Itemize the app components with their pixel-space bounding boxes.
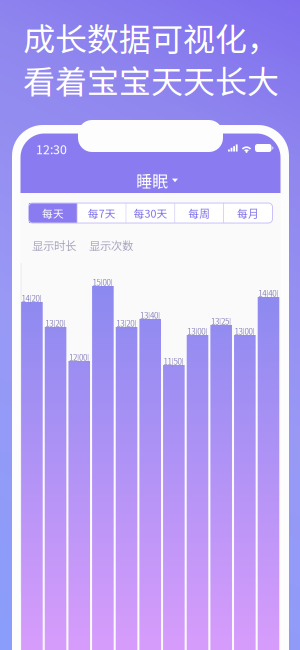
staticText: 11|50| <box>164 355 184 367</box>
staticText: 每周 <box>188 205 210 221</box>
staticText: 看着宝宝天天长大 <box>23 56 279 103</box>
staticText: 12|00| <box>69 351 89 363</box>
staticText: 成长数据可视化， <box>23 14 279 60</box>
button[interactable]: 每7天 <box>78 203 126 223</box>
button[interactable]: 每30天 <box>126 203 174 223</box>
staticText: 每天 <box>42 205 64 221</box>
staticText: 每30天 <box>133 205 167 221</box>
staticText: 13|25| <box>211 315 231 327</box>
button[interactable]: 每月 <box>224 203 272 223</box>
button[interactable]: 显示时长 <box>32 237 76 253</box>
button[interactable]: 睡眠 <box>130 166 184 195</box>
staticText: 13|00| <box>187 325 207 337</box>
staticText: 13|20| <box>116 317 136 329</box>
staticText: 13|40| <box>140 309 160 321</box>
staticText: 显示时长 <box>32 237 76 253</box>
staticText: 显示次数 <box>89 237 133 253</box>
button[interactable]: 每周 <box>175 203 223 223</box>
staticText: 睡眠 <box>136 169 168 192</box>
button[interactable]: 显示次数 <box>89 237 133 253</box>
staticText: 每7天 <box>88 205 116 221</box>
staticText: 13|20| <box>45 317 65 329</box>
button[interactable]: 每天 <box>29 203 77 223</box>
staticText: 14|20| <box>22 292 42 304</box>
staticText: 13|00| <box>234 325 254 337</box>
staticText: 15|00| <box>93 276 113 288</box>
staticText: 14|40| <box>258 287 278 299</box>
staticText: 12:30 <box>36 140 67 158</box>
staticText: 每月 <box>237 205 259 221</box>
